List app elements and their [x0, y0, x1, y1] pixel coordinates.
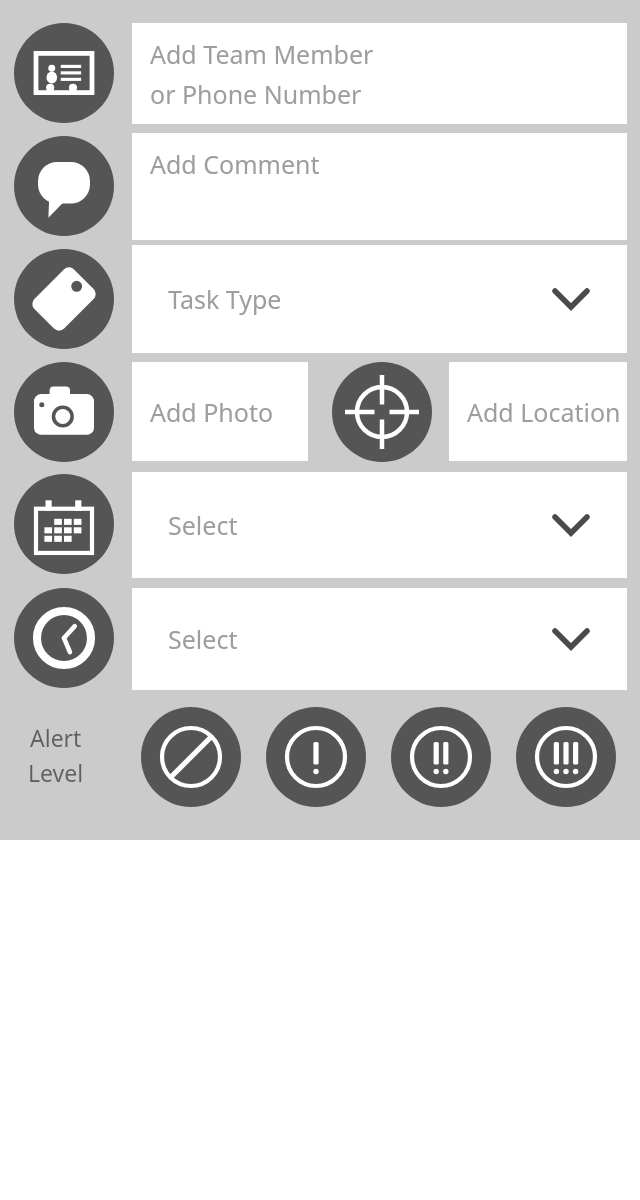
staticText: Task Type: [168, 282, 282, 316]
staticText: Add Location: [467, 395, 621, 429]
button[interactable]: Medium alert: [391, 707, 491, 807]
staticText: Select: [168, 508, 238, 542]
button[interactable]: Pick date: [14, 474, 114, 574]
staticText: or Phone Number: [150, 77, 362, 111]
button[interactable]: Pick time: [14, 588, 114, 688]
button[interactable]: No alert: [141, 707, 241, 807]
staticText: Select: [168, 622, 238, 656]
button[interactable]: High alert: [516, 707, 616, 807]
button[interactable]: Add comment: [14, 136, 114, 236]
staticText: Add Team Member: [150, 37, 374, 71]
button[interactable]: Add photo: [14, 362, 114, 462]
button[interactable]: Low alert: [266, 707, 366, 807]
staticText: Add Comment: [150, 147, 320, 181]
staticText: Add Photo: [150, 395, 274, 429]
button[interactable]: Task type: [14, 249, 114, 349]
button[interactable]: Select: [132, 472, 627, 578]
button[interactable]: Add Photo: [132, 362, 308, 461]
button[interactable]: Add Comment: [132, 133, 627, 240]
button[interactable]: Add Team Member: [132, 23, 627, 124]
button[interactable]: Task Type: [132, 245, 627, 353]
button[interactable]: Set location: [332, 362, 432, 462]
button[interactable]: Add team member: [14, 23, 114, 123]
staticText: Alert: [30, 722, 82, 753]
staticText: Level: [28, 757, 84, 788]
button[interactable]: Select: [132, 588, 627, 690]
button[interactable]: Add Location: [449, 362, 627, 461]
